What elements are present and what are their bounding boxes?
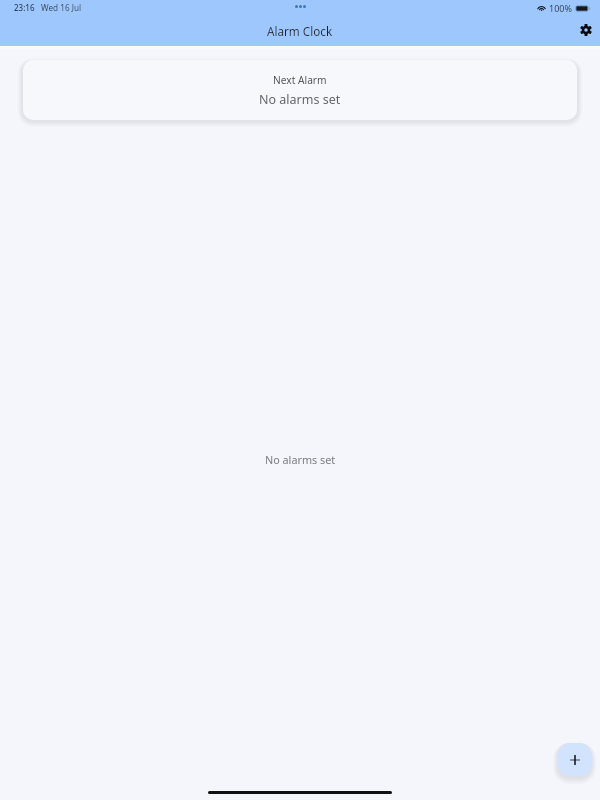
staticText: No alarms set [265, 452, 336, 467]
staticText: No alarms set [259, 91, 341, 108]
button[interactable]: Next Alarm [23, 60, 577, 120]
button[interactable]: Add alarm [558, 743, 591, 776]
staticText: Alarm Clock [267, 23, 333, 39]
staticText: Wed 16 Jul [41, 2, 82, 13]
staticText: 23:16 [14, 2, 35, 13]
button[interactable]: Settings [572, 16, 600, 44]
staticText: 100% [549, 2, 572, 14]
staticText: Next Alarm [273, 73, 327, 87]
